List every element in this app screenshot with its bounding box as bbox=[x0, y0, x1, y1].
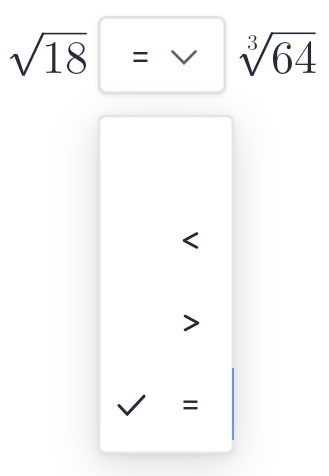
button[interactable]: comparison option bbox=[98, 224, 234, 256]
button[interactable]: comparison option bbox=[98, 307, 234, 339]
staticText: 3 bbox=[247, 25, 259, 56]
staticText: 64 bbox=[271, 21, 317, 86]
button[interactable]: comparison option bbox=[98, 389, 234, 421]
button[interactable]: Comparison operator, equals. Open list bbox=[98, 16, 226, 94]
staticText: 18 bbox=[42, 21, 88, 86]
